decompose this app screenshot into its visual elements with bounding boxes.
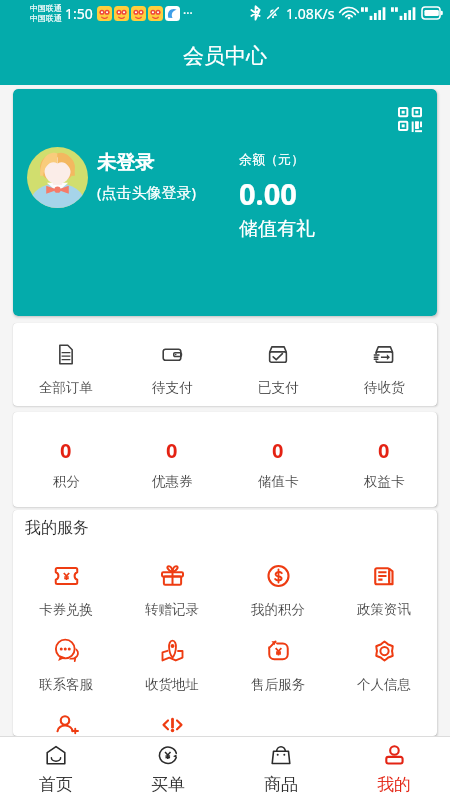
button[interactable]: 扫一扫 — [390, 99, 430, 139]
button[interactable]: 售后服务 — [225, 640, 331, 715]
staticText: 商品 — [264, 774, 298, 795]
staticText: ··· — [183, 5, 193, 21]
button[interactable]: 0 — [225, 412, 331, 507]
button[interactable]: 邀请好友 — [13, 715, 119, 736]
staticText: 0 — [166, 437, 178, 464]
button[interactable]: 待支付 — [119, 323, 225, 406]
staticText: 优惠券 — [152, 473, 193, 490]
button[interactable]: 0 — [13, 412, 119, 507]
staticText: 卡券兑换 — [39, 601, 93, 618]
staticText: 中国联通 — [30, 13, 62, 23]
staticText: 售后服务 — [251, 676, 305, 693]
staticText: 首页 — [39, 774, 73, 795]
staticText: 储值有礼 — [239, 217, 315, 241]
staticText: 中国联通 — [30, 3, 62, 13]
button[interactable]: 待收货 — [331, 323, 437, 406]
staticText: 政策资讯 — [357, 601, 411, 618]
button[interactable]: 全部订单 — [13, 323, 119, 406]
staticText: 我的服务 — [25, 518, 89, 538]
staticText: 收货地址 — [145, 676, 199, 693]
button[interactable]: 首页 — [0, 737, 112, 800]
button[interactable]: 买单 — [112, 737, 224, 800]
staticText: 0 — [272, 437, 284, 464]
button[interactable]: 0 — [119, 412, 225, 507]
button[interactable]: 卡券兑换 — [13, 565, 119, 640]
staticText: 0 — [378, 437, 390, 464]
button[interactable]: 我的 — [337, 737, 450, 800]
button[interactable]: 我的积分 — [225, 565, 331, 640]
staticText: 1:50 — [65, 4, 93, 23]
button[interactable]: 政策资讯 — [331, 565, 437, 640]
button[interactable]: 收货地址 — [119, 640, 225, 715]
staticText: 待支付 — [152, 379, 193, 396]
staticText: (点击头像登录) — [97, 182, 197, 202]
staticText: 联系客服 — [39, 676, 93, 693]
staticText: 0.00 — [239, 174, 297, 213]
staticText: 储值卡 — [258, 473, 299, 490]
button[interactable]: 商品 — [224, 737, 337, 800]
staticText: 已支付 — [258, 379, 299, 396]
staticText: 0 — [60, 437, 72, 464]
staticText: 待收货 — [364, 379, 405, 396]
staticText: 会员中心 — [183, 43, 267, 69]
button[interactable]: 扫一扫 — [13, 89, 437, 316]
button[interactable]: 0 — [331, 412, 437, 507]
staticText: 1.08K/s — [286, 4, 335, 23]
staticText: 余额（元） — [239, 151, 304, 167]
staticText: 积分 — [53, 473, 80, 490]
staticText: 我的 — [377, 774, 411, 795]
staticText: 个人信息 — [357, 676, 411, 693]
button[interactable]: 个人信息 — [331, 640, 437, 715]
button[interactable]: 意见反馈 — [119, 715, 225, 736]
staticText: 转赠记录 — [145, 601, 199, 618]
staticText: 买单 — [151, 774, 185, 795]
staticText: 未登录 — [97, 151, 154, 175]
button[interactable]: 转赠记录 — [119, 565, 225, 640]
button[interactable]: 已支付 — [225, 323, 331, 406]
staticText: 权益卡 — [364, 473, 405, 490]
staticText: 全部订单 — [39, 379, 93, 396]
staticText: 我的积分 — [251, 601, 305, 618]
button[interactable]: 联系客服 — [13, 640, 119, 715]
